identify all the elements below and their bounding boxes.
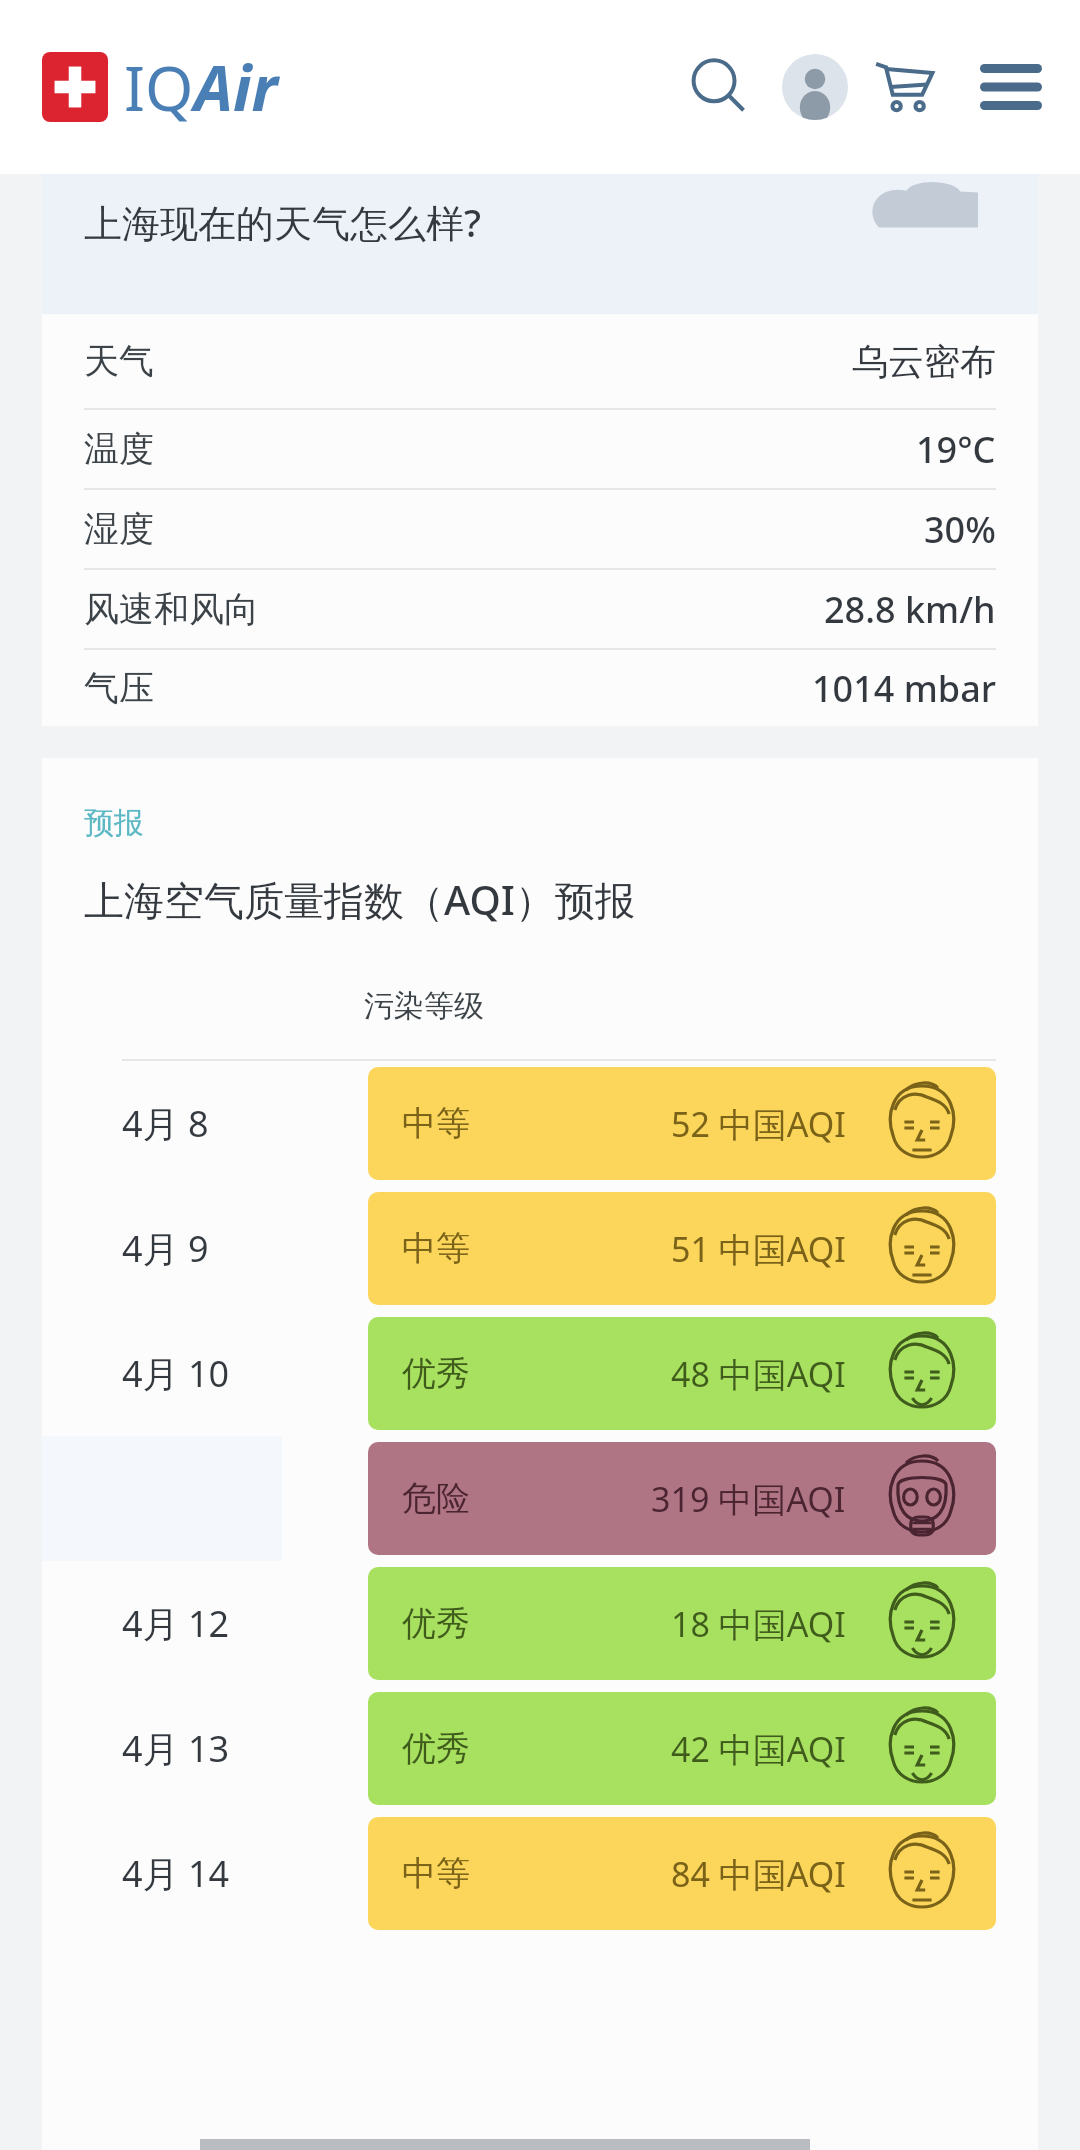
staticText: 48 中国AQI [671, 1351, 846, 1397]
staticText: 4月 12 [122, 1599, 230, 1648]
staticText: 42 中国AQI [671, 1726, 846, 1772]
staticText: 319 中国AQI [651, 1476, 846, 1522]
button[interactable]: Search [682, 50, 756, 124]
staticText: 4月 10 [122, 1349, 230, 1398]
staticText: 18 中国AQI [671, 1601, 846, 1647]
button[interactable]: 湿度 [84, 490, 996, 568]
staticText: 优秀 [402, 1602, 470, 1645]
staticText: 中等 [402, 1852, 470, 1895]
staticText: 51 中国AQI [671, 1226, 846, 1272]
staticText: IQ [124, 45, 194, 129]
staticText: 湿度 [84, 507, 154, 551]
button[interactable]: 温度 [84, 410, 996, 488]
button[interactable]: 风速和风向 [84, 570, 996, 648]
button[interactable]: 4月 8 [42, 1061, 1038, 1186]
staticText: 污染等级 [364, 987, 484, 1025]
button[interactable]: 4月 14 [42, 1811, 1038, 1936]
staticText: 1014 mbar [812, 664, 996, 713]
staticText: 优秀 [402, 1352, 470, 1395]
staticText: 4月 8 [122, 1099, 209, 1148]
button[interactable]: Account [778, 50, 852, 124]
staticText: 中等 [402, 1227, 470, 1270]
button[interactable]: 气压 [84, 650, 996, 726]
button[interactable]: 天气 [84, 314, 996, 408]
button[interactable]: Menu [974, 50, 1048, 124]
staticText: 优秀 [402, 1727, 470, 1770]
staticText: 上海现在的天气怎么样? [84, 196, 481, 248]
staticText: 52 中国AQI [671, 1101, 846, 1147]
staticText: 4月 14 [122, 1849, 230, 1898]
staticText: Air [194, 45, 278, 129]
button[interactable]: 4月 9 [42, 1186, 1038, 1311]
staticText: 30% [924, 505, 996, 554]
staticText: 温度 [84, 427, 154, 471]
button[interactable]: 4月 13 [42, 1686, 1038, 1811]
staticText: 风速和风向 [84, 587, 259, 631]
staticText: 预报 [84, 804, 144, 842]
staticText: 28.8 km/h [824, 585, 996, 634]
staticText: 19°C [916, 425, 996, 474]
staticText: 乌云密布 [852, 339, 996, 384]
staticText: 气压 [84, 666, 154, 710]
button[interactable]: 4月 10 [42, 1311, 1038, 1436]
button[interactable]: 危险 [42, 1436, 1038, 1561]
button[interactable]: Cart [866, 50, 940, 124]
staticText: 84 中国AQI [671, 1851, 846, 1897]
staticText: 中等 [402, 1102, 470, 1145]
staticText: 危险 [402, 1477, 470, 1520]
staticText: 天气 [84, 339, 154, 383]
staticText: 4月 9 [122, 1224, 209, 1273]
staticText: 上海空气质量指数（AQI）预报 [84, 872, 635, 927]
staticText: 4月 13 [122, 1724, 230, 1773]
button[interactable]: 4月 12 [42, 1561, 1038, 1686]
